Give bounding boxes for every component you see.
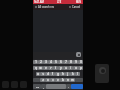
staticText: s: [42, 72, 44, 76]
staticText: Cancel: [72, 5, 81, 9]
staticText: LTE: [57, 0, 62, 4]
staticText: .: [68, 85, 69, 89]
button[interactable]: i: [68, 66, 73, 70]
staticText: t: [55, 66, 56, 70]
staticText: 7: [65, 60, 67, 64]
button[interactable]: 2: [38, 60, 43, 64]
button[interactable]: .: [66, 84, 71, 89]
staticText: o: [75, 66, 77, 70]
staticText: x: [47, 78, 49, 82]
staticText: 1: [35, 60, 37, 64]
staticText: r: [50, 66, 52, 70]
button[interactable]: k: [70, 72, 75, 76]
staticText: 86%: [76, 0, 82, 4]
button[interactable]: w: [38, 66, 43, 70]
staticText: All search res: [38, 5, 55, 9]
staticText: ,: [43, 85, 44, 89]
staticText: n: [67, 78, 69, 82]
button[interactable]: 8: [68, 60, 73, 64]
staticText: b: [62, 78, 64, 82]
button[interactable]: e: [43, 66, 48, 70]
button[interactable]: c: [50, 78, 55, 82]
button[interactable]: s: [40, 72, 45, 76]
staticText: 6: [60, 60, 62, 64]
button[interactable]: u: [63, 66, 68, 70]
button[interactable]: q: [33, 66, 38, 70]
button[interactable]: o: [73, 66, 78, 70]
staticText: e: [45, 66, 47, 70]
button[interactable]: g: [55, 72, 60, 76]
button[interactable]: [71, 84, 83, 89]
button[interactable]: d: [45, 72, 50, 76]
staticText: z: [42, 78, 44, 82]
staticText: c: [52, 78, 54, 82]
staticText: 8: [70, 60, 72, 64]
button[interactable]: 0: [78, 60, 83, 64]
staticText: p: [80, 66, 82, 70]
button[interactable]: a: [36, 72, 40, 76]
button[interactable]: ,: [41, 84, 46, 89]
button[interactable]: Cancel: [67, 5, 83, 9]
staticText: 5: [55, 60, 57, 64]
staticText: 4: [50, 60, 52, 64]
button[interactable]: 6: [58, 60, 63, 64]
staticText: m: [71, 78, 74, 82]
staticText: 2: [40, 60, 42, 64]
button[interactable]: m: [70, 78, 75, 82]
button[interactable]: x: [45, 78, 50, 82]
staticText: j: [67, 72, 68, 76]
staticText: 9:41 AM: [34, 0, 44, 4]
button[interactable]: p: [78, 66, 83, 70]
button[interactable]: j: [65, 72, 70, 76]
staticText: ?12: [36, 86, 39, 88]
button[interactable]: f: [50, 72, 55, 76]
staticText: 0: [80, 60, 82, 64]
button[interactable]: ?12: [33, 84, 41, 89]
staticText: q: [35, 66, 37, 70]
staticText: h: [62, 72, 64, 76]
staticText: 9: [75, 60, 77, 64]
button[interactable]: n: [65, 78, 70, 82]
button[interactable]: 4: [48, 60, 53, 64]
button[interactable]: h: [60, 72, 65, 76]
button[interactable]: z: [40, 78, 45, 82]
staticText: d: [47, 72, 49, 76]
staticText: k: [72, 72, 74, 76]
button[interactable]: 7: [63, 60, 68, 64]
button[interactable]: All search res: [33, 5, 57, 9]
button[interactable]: 5: [53, 60, 58, 64]
staticText: u: [65, 66, 67, 70]
button[interactable]: y: [58, 66, 63, 70]
button[interactable]: b: [60, 78, 65, 82]
button[interactable]: t: [53, 66, 58, 70]
staticText: w: [39, 66, 42, 70]
staticText: i: [70, 66, 71, 70]
button[interactable]: 3: [43, 60, 48, 64]
staticText: 3: [45, 60, 47, 64]
button[interactable]: v: [55, 78, 60, 82]
staticText: g: [57, 72, 59, 76]
button[interactable]: 9: [73, 60, 78, 64]
staticText: l: [77, 72, 78, 76]
button[interactable]: [46, 84, 66, 89]
staticText: a: [37, 72, 39, 76]
button[interactable]: 1: [33, 60, 38, 64]
button[interactable]: Keyboard settings: [76, 52, 81, 57]
staticText: f: [52, 72, 53, 76]
staticText: v: [57, 78, 59, 82]
staticText: y: [60, 66, 62, 70]
button[interactable]: r: [48, 66, 53, 70]
button[interactable]: l: [75, 72, 80, 76]
